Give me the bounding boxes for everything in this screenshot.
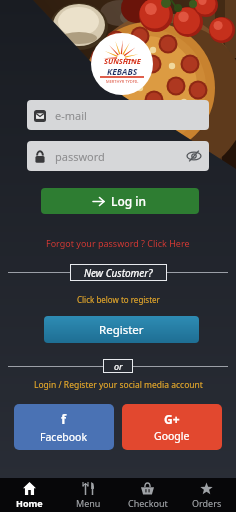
button[interactable]: Register	[44, 316, 199, 343]
staticText: Google	[154, 429, 190, 443]
button[interactable]: G+	[122, 404, 222, 450]
staticText: f	[61, 410, 67, 428]
button[interactable]: Home	[0, 478, 59, 512]
staticText: e-mail	[55, 108, 87, 123]
staticText: G+	[164, 411, 180, 427]
staticText: MERTHYR TYDFIL	[106, 79, 139, 84]
staticText: Forgot your password ? Click Here	[46, 237, 190, 249]
staticText: Checkout	[128, 497, 168, 509]
staticText: Log in	[111, 193, 147, 209]
staticText: Click below to register	[77, 294, 160, 305]
staticText: password	[55, 149, 105, 164]
button[interactable]: e-mail	[27, 100, 209, 130]
button[interactable]: password	[27, 141, 209, 171]
staticText: Menu	[76, 497, 101, 509]
staticText: New Customer?	[84, 266, 153, 280]
button[interactable]: f	[14, 404, 114, 450]
staticText: Register	[99, 322, 144, 338]
button[interactable]: Menu	[59, 478, 118, 512]
staticText: KEBABS	[107, 66, 138, 76]
staticText: Facebook	[40, 430, 88, 444]
staticText: Orders	[192, 497, 222, 509]
staticText: Home	[16, 497, 43, 509]
button[interactable]: Orders	[177, 478, 236, 512]
button[interactable]: Checkout	[118, 478, 177, 512]
button[interactable]: Forgot your password ? Click Here	[0, 236, 236, 250]
staticText: SUNSHINE	[104, 56, 141, 66]
staticText: Login / Register your social media accou…	[34, 379, 203, 391]
staticText: or	[114, 360, 123, 372]
button[interactable]: Log in	[41, 188, 199, 214]
